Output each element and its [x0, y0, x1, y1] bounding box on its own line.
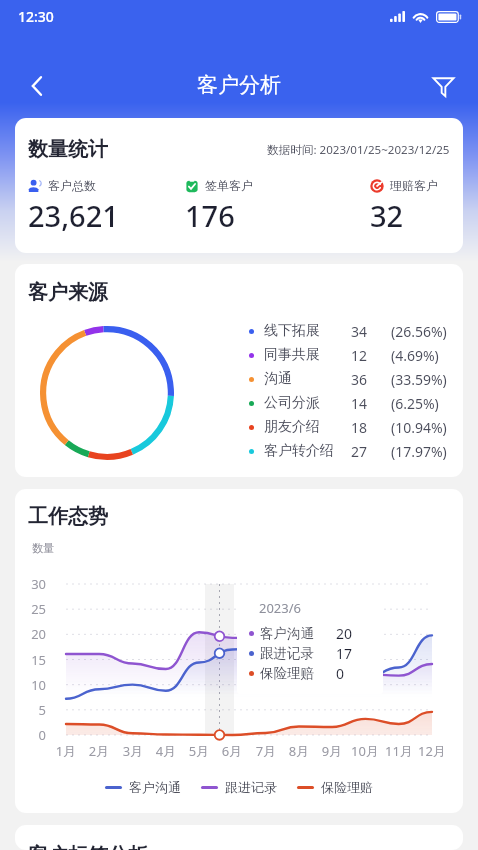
staticText: 沟通: [264, 370, 351, 388]
staticText: 0: [15, 726, 46, 744]
staticText: 3月: [113, 742, 153, 760]
staticText: 公司分派: [264, 394, 351, 412]
staticText: 8月: [279, 742, 319, 760]
staticText: 线下拓展: [264, 322, 351, 340]
staticText: 2月: [79, 742, 119, 760]
staticText: 0: [336, 664, 345, 682]
staticText: 176: [185, 196, 235, 235]
staticText: 数据时间: 2023/01/25~2023/12/25: [267, 142, 450, 158]
staticText: 5月: [179, 742, 219, 760]
staticText: 客户来源: [28, 280, 108, 305]
staticText: 14: [351, 394, 391, 413]
staticText: 朋友介绍: [264, 418, 351, 436]
staticText: 客户沟通: [129, 779, 181, 795]
staticText: 1月: [46, 742, 86, 760]
staticText: 34: [351, 322, 391, 341]
staticText: 保险理赔: [260, 665, 336, 682]
staticText: (26.56%): [391, 322, 447, 341]
staticText: 7月: [246, 742, 286, 760]
staticText: 2023/6: [259, 599, 302, 617]
staticText: 6月: [212, 742, 252, 760]
staticText: 32: [370, 196, 404, 235]
staticText: 18: [351, 418, 391, 437]
staticText: (10.94%): [391, 418, 447, 437]
staticText: 23,621: [28, 196, 119, 235]
staticText: 客户转介绍: [264, 442, 351, 460]
staticText: 客户沟通: [260, 625, 336, 642]
staticText: 12月: [412, 742, 452, 760]
button[interactable]: Back: [14, 63, 60, 109]
staticText: 20: [15, 625, 46, 643]
staticText: 客户总数: [48, 178, 96, 193]
staticText: 9月: [312, 742, 352, 760]
staticText: (17.97%): [391, 442, 447, 461]
staticText: 10: [15, 676, 46, 694]
staticText: 11月: [379, 742, 419, 760]
staticText: 客户分析: [197, 72, 281, 98]
staticText: 12:30: [18, 7, 54, 26]
staticText: 20: [336, 624, 353, 642]
staticText: 36: [351, 370, 391, 389]
staticText: 客户标签分析: [28, 843, 148, 850]
staticText: 27: [351, 442, 391, 461]
staticText: 17: [336, 644, 353, 662]
staticText: 理赔客户: [390, 178, 438, 193]
staticText: 数量统计: [28, 137, 108, 162]
staticText: 10月: [345, 742, 385, 760]
button[interactable]: Filter: [420, 63, 466, 109]
staticText: 12: [351, 346, 391, 365]
staticText: (33.59%): [391, 370, 447, 389]
staticText: 15: [15, 651, 46, 669]
staticText: 同事共展: [264, 346, 351, 364]
staticText: 5: [15, 701, 46, 719]
staticText: 跟进记录: [260, 645, 336, 662]
staticText: 工作态势: [28, 504, 108, 529]
staticText: (4.69%): [391, 346, 439, 365]
staticText: 保险理赔: [321, 779, 373, 795]
staticText: (6.25%): [391, 394, 439, 413]
staticText: 4月: [146, 742, 186, 760]
staticText: 25: [15, 600, 46, 618]
staticText: 数量: [32, 541, 54, 555]
staticText: 签单客户: [205, 178, 253, 193]
staticText: 跟进记录: [225, 779, 277, 795]
staticText: 30: [15, 575, 46, 593]
